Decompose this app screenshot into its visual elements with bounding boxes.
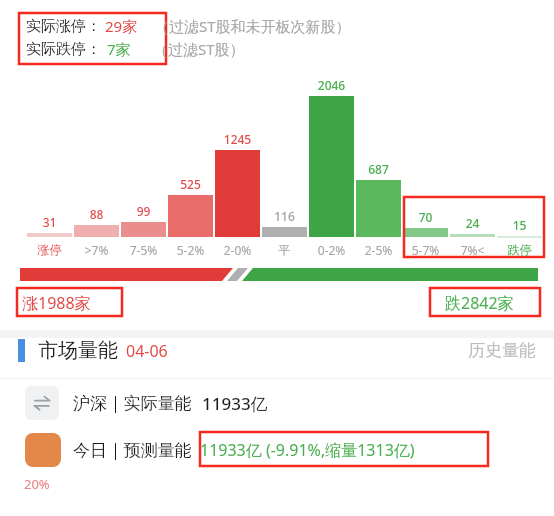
staticText: 今日｜预测量能	[73, 440, 192, 461]
staticText: 实际跌停：	[26, 40, 101, 59]
staticText: 7-5%	[118, 242, 169, 258]
staticText: 沪深｜实际量能	[73, 393, 192, 414]
staticText: >7%	[71, 242, 122, 258]
staticText: 涨1988家	[22, 292, 91, 314]
staticText: 市场量能	[38, 338, 118, 363]
staticText: 11933亿	[202, 392, 268, 415]
staticText: 5-7%	[400, 242, 451, 258]
staticText: 跌停	[494, 242, 545, 257]
staticText: 0-2%	[306, 242, 357, 258]
staticText: 1245	[215, 131, 260, 147]
staticText: 涨停	[24, 242, 75, 257]
staticText: 15	[497, 217, 542, 233]
staticText: 04-06	[126, 340, 168, 362]
staticText: 7%<	[447, 242, 498, 258]
staticText: 116	[262, 208, 307, 224]
staticText: 20%	[24, 475, 50, 491]
staticText: 5-2%	[165, 242, 216, 258]
staticText: 2046	[309, 77, 354, 93]
staticText: 7家	[107, 39, 131, 59]
button[interactable]: 涨1988家	[0, 260, 554, 320]
staticText: 跌2842家	[445, 292, 514, 314]
button[interactable]: 沪深 actual volume	[0, 379, 554, 427]
button[interactable]: 今日｜预测量能	[0, 427, 554, 473]
button[interactable]: 历史量能	[468, 340, 536, 361]
other: 沪深 actual volume	[25, 386, 59, 420]
staticText: 31	[27, 214, 72, 230]
staticText: （过滤ST股）	[153, 39, 245, 59]
staticText: 11933亿 (-9.91%,缩量1313亿)	[200, 439, 415, 461]
staticText: 525	[168, 176, 213, 192]
button[interactable]: 31	[0, 70, 554, 260]
staticText: 29家	[105, 16, 138, 36]
staticText: 24	[450, 215, 495, 231]
staticText: 历史量能	[468, 340, 536, 361]
staticText: （过滤ST股和未开板次新股）	[154, 16, 351, 36]
staticText: 99	[121, 203, 166, 219]
staticText: 平	[259, 242, 310, 257]
staticText: 2-0%	[212, 242, 263, 258]
staticText: 687	[356, 161, 401, 177]
staticText: 70	[403, 209, 448, 225]
staticText: 88	[74, 206, 119, 222]
staticText: 2-5%	[353, 242, 404, 258]
staticText: 实际涨停：	[26, 17, 101, 36]
